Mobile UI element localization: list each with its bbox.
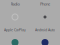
- button[interactable]: Radio: [0, 1, 30, 7]
- staticText: Radio: [10, 1, 19, 7]
- staticText: Phone: [40, 1, 50, 7]
- button[interactable]: Phone: [30, 1, 60, 7]
- staticText: Android Auto: [35, 28, 55, 32]
- staticText: Apple CarPlay: [4, 28, 26, 32]
